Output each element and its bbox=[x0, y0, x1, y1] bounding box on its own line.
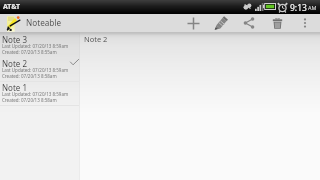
staticText: Created: 07/20/13 8:55am bbox=[2, 49, 57, 55]
staticText: Note 2 bbox=[2, 58, 27, 69]
staticText: Note 2 bbox=[84, 34, 108, 44]
button[interactable]: Delete bbox=[263, 14, 291, 32]
staticText: Created: 07/20/13 8:58am bbox=[2, 97, 57, 103]
staticText: AM bbox=[308, 4, 317, 11]
staticText: 9:13 bbox=[290, 2, 307, 14]
button[interactable]: Note 3 bbox=[0, 34, 79, 58]
staticText: Last Updated: 07/20/13 8:59am bbox=[2, 91, 69, 97]
staticText: Last Updated: 07/20/13 8:59am bbox=[2, 43, 69, 49]
staticText: Note 1 bbox=[2, 82, 27, 93]
button[interactable]: Edit bbox=[207, 14, 235, 32]
button[interactable]: More options bbox=[291, 14, 319, 32]
staticText: Last Updated: 07/20/13 8:59am bbox=[2, 67, 69, 73]
button[interactable]: Add bbox=[179, 14, 207, 32]
staticText: AT&T bbox=[3, 2, 21, 12]
button[interactable]: Note 2 bbox=[0, 58, 79, 82]
button[interactable]: Note 1 bbox=[0, 82, 79, 106]
button[interactable]: Share bbox=[235, 14, 263, 32]
staticText: Created: 07/20/13 8:58am bbox=[2, 73, 57, 79]
staticText: Note 3 bbox=[2, 34, 27, 45]
staticText: Noteable bbox=[26, 17, 62, 28]
